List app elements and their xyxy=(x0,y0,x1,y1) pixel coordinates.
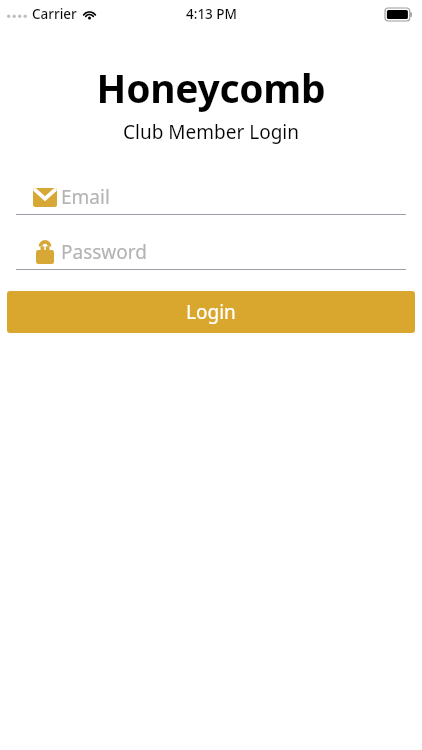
staticText: Carrier xyxy=(32,5,77,23)
staticText: Club Member Login xyxy=(0,119,422,145)
button[interactable]: Password xyxy=(0,236,422,270)
other: Email xyxy=(33,185,57,209)
staticText: Login xyxy=(186,299,236,325)
other: Password xyxy=(33,240,57,264)
staticText: Password xyxy=(61,239,147,265)
button[interactable]: Login xyxy=(7,291,415,333)
staticText: 4:13 PM xyxy=(186,5,237,23)
staticText: Honeycomb xyxy=(0,61,422,114)
button[interactable]: Email xyxy=(0,181,422,215)
staticText: Email xyxy=(61,184,110,210)
